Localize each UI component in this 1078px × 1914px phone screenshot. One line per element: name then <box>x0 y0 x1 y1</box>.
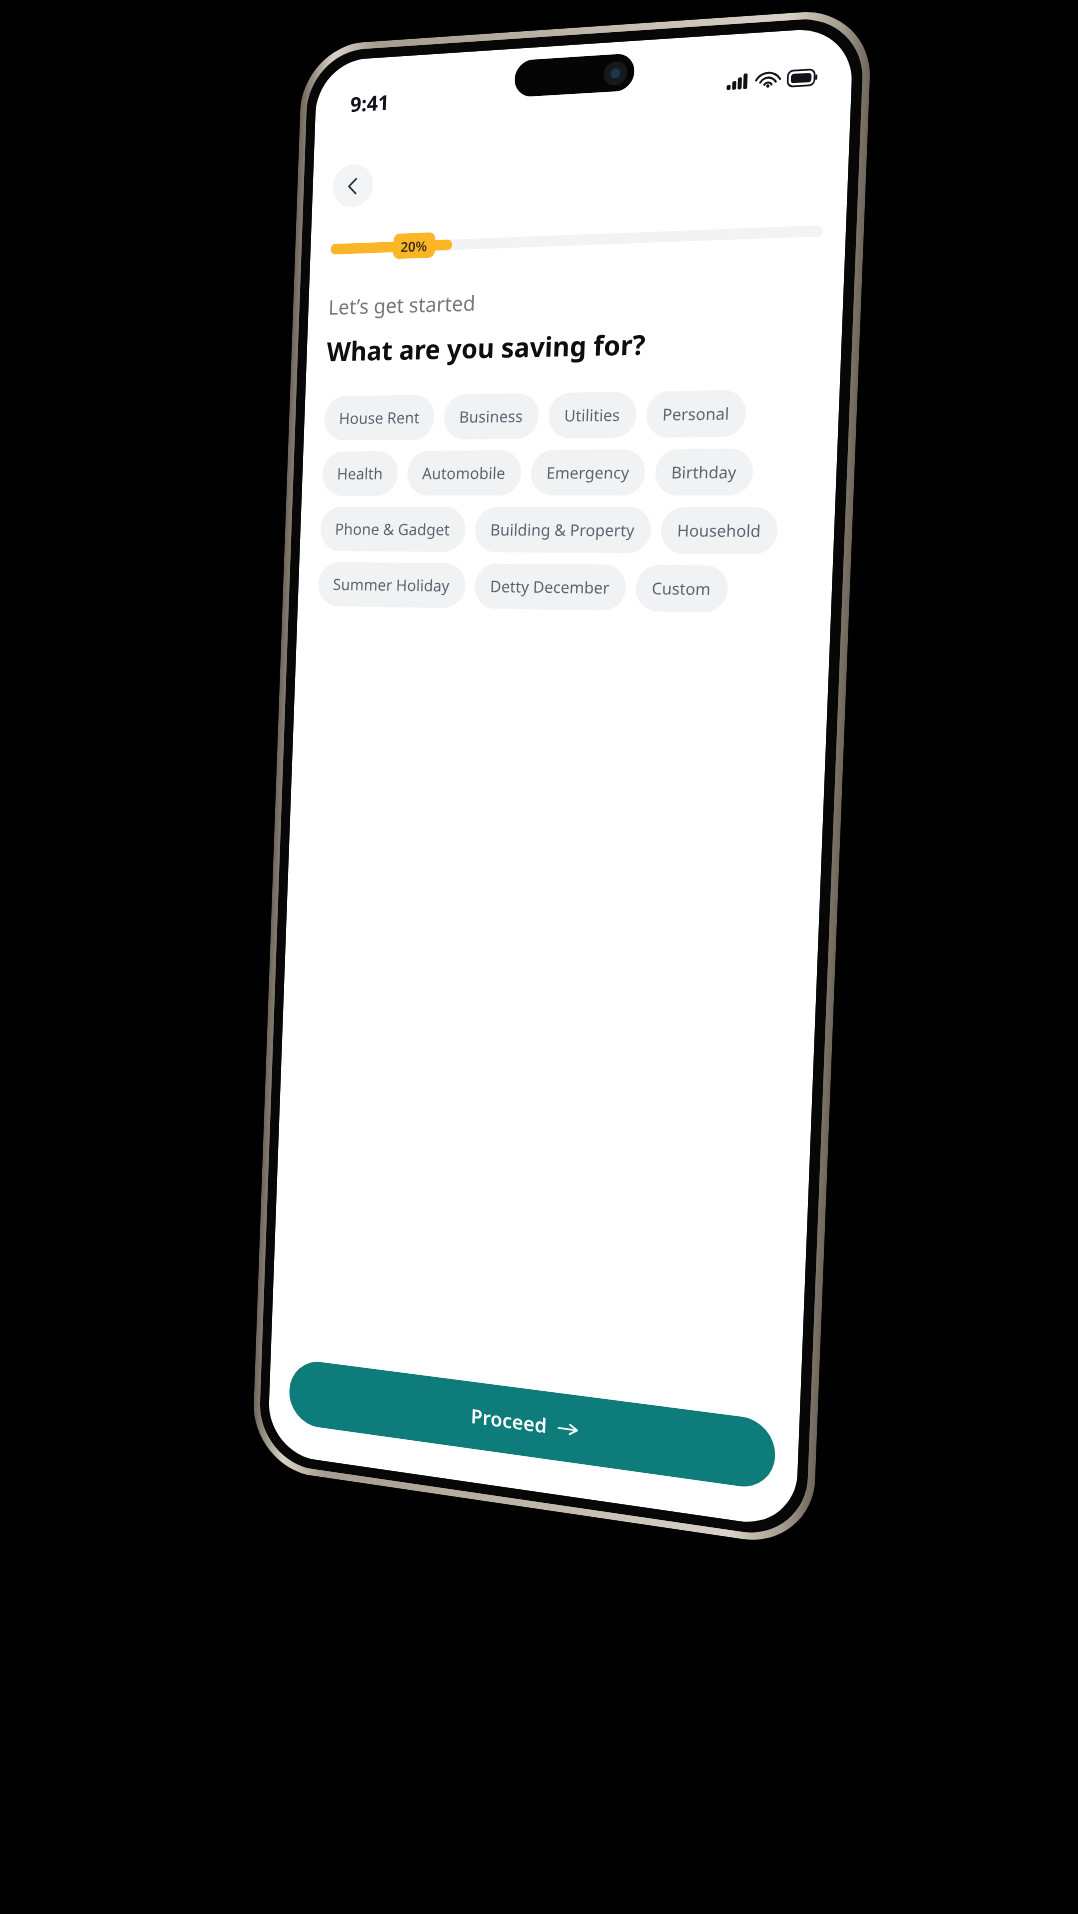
staticText: What are you saving for? <box>326 325 647 369</box>
button[interactable]: Phone & Gadget <box>320 507 466 552</box>
button[interactable]: Emergency <box>530 449 646 496</box>
staticText: Emergency <box>546 461 630 484</box>
staticText: Birthday <box>671 461 737 483</box>
button[interactable]: Proceed <box>288 1358 776 1491</box>
staticText: Household <box>677 519 761 542</box>
button[interactable]: Custom <box>635 565 729 613</box>
staticText: Building & Property <box>490 519 635 541</box>
staticText: 9:41 <box>350 88 390 119</box>
staticText: Let’s get started <box>328 289 476 322</box>
button[interactable]: House Rent <box>324 394 435 441</box>
staticText: Business <box>459 405 524 428</box>
button[interactable]: Back <box>332 163 374 208</box>
button[interactable]: Health <box>322 451 399 496</box>
button[interactable]: Birthday <box>654 448 754 496</box>
button[interactable]: Detty December <box>474 563 627 611</box>
staticText: Summer Holiday <box>333 573 450 596</box>
staticText: Personal <box>662 402 730 425</box>
staticText: Phone & Gadget <box>335 518 451 540</box>
staticText: Custom <box>651 577 712 600</box>
staticText: House Rent <box>339 406 420 429</box>
button[interactable]: Household <box>660 507 779 555</box>
button[interactable]: Automobile <box>406 450 522 496</box>
staticText: Health <box>337 463 383 484</box>
staticText: Automobile <box>422 462 506 484</box>
staticText: Utilities <box>564 404 621 427</box>
button[interactable]: Summer Holiday <box>318 562 466 608</box>
button[interactable]: Utilities <box>548 391 637 439</box>
staticText: Proceed <box>470 1402 547 1439</box>
button[interactable]: Building & Property <box>474 507 652 554</box>
button[interactable]: Business <box>443 393 540 440</box>
staticText: Detty December <box>490 575 610 599</box>
button[interactable]: Personal <box>645 390 747 438</box>
staticText: 20% <box>400 236 428 256</box>
